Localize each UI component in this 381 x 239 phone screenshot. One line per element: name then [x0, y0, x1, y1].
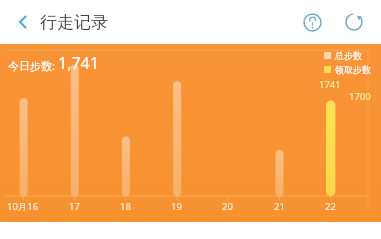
staticText: 1,741: [58, 52, 99, 74]
staticText: 22: [325, 200, 336, 213]
staticText: 总步数: [335, 50, 362, 61]
staticText: 19: [171, 200, 182, 213]
staticText: 21: [274, 200, 285, 213]
button[interactable]: 步数柱状图: [0, 44, 381, 222]
staticText: 17: [69, 200, 80, 213]
staticText: 18: [120, 200, 131, 213]
staticText: 行走记录: [40, 12, 108, 33]
staticText: 20: [222, 200, 233, 213]
staticText: 1700: [349, 90, 371, 103]
button[interactable]: 帮助: [295, 5, 329, 39]
staticText: 今日步数:: [8, 58, 55, 73]
staticText: 领取步数: [335, 64, 371, 75]
button[interactable]: 刷新: [337, 5, 371, 39]
staticText: 10月16: [7, 200, 39, 213]
staticText: 1741: [319, 78, 341, 91]
button[interactable]: 返回: [6, 5, 40, 39]
